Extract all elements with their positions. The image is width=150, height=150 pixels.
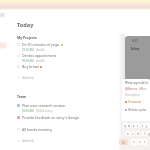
staticText: Website updat: [128, 108, 147, 112]
staticText: Health: [36, 59, 45, 63]
staticText: ·: [22, 133, 23, 137]
staticText: d: [137, 132, 139, 136]
button[interactable]: g: [147, 131, 150, 136]
staticText: 9:41: [132, 39, 138, 43]
button[interactable]: e: [132, 123, 136, 128]
staticText: All hands meeting: [22, 127, 52, 132]
button[interactable]: r: [136, 123, 140, 128]
staticText: 09:30 AM: [22, 59, 34, 63]
button[interactable]: Provide feedback on story's design: [0, 115, 150, 120]
button[interactable]: Add task: [0, 76, 150, 80]
staticText: Description: [125, 93, 140, 97]
staticText: @Marcus: [125, 87, 138, 91]
staticText: Provide feedback on story's design: [22, 115, 80, 120]
staticText: q: [124, 124, 126, 128]
staticText: f: [144, 132, 145, 136]
staticText: 09:00 AM: [22, 109, 34, 113]
staticText: z: [133, 140, 135, 144]
button[interactable]: x: [137, 139, 142, 145]
staticText: Do 30 minutes of yoga: [22, 42, 60, 47]
staticText: Inbox: [131, 47, 140, 51]
staticText: 07:30 AM: [22, 48, 34, 52]
staticText: Add task: [22, 139, 35, 143]
staticText: Q3 Discovery: [36, 109, 53, 113]
staticText: x: [139, 140, 141, 144]
staticText: Team: [17, 94, 27, 99]
staticText: w: [128, 124, 131, 128]
button[interactable]: Dentist appointment: [0, 53, 150, 63]
button[interactable]: y: [145, 123, 149, 128]
button[interactable]: All hands meeting: [0, 127, 150, 137]
staticText: r: [137, 124, 139, 128]
staticText: Add task: [22, 76, 35, 80]
staticText: #Mee: [139, 87, 147, 91]
button[interactable]: Today: [17, 21, 34, 29]
button[interactable]: Add task: [0, 139, 150, 143]
button[interactable]: Plan user research session: [0, 103, 150, 113]
staticText: e: [133, 124, 135, 128]
button[interactable]: Do 30 minutes of yoga: [0, 42, 150, 52]
button[interactable]: a: [126, 131, 130, 136]
button[interactable]: q: [123, 123, 127, 128]
button[interactable]: c: [142, 139, 147, 145]
staticText: Health: [36, 48, 45, 52]
staticText: Plan user research session: [22, 103, 66, 108]
staticText: My Projects: [17, 35, 37, 40]
button[interactable]: z: [131, 139, 136, 145]
staticText: Buy bread: [22, 64, 39, 69]
staticText: c: [144, 140, 146, 144]
button[interactable]: Buy bread: [0, 64, 150, 69]
button[interactable]: t: [141, 123, 145, 128]
staticText: Write agenda fo: [125, 81, 149, 85]
staticText: a: [127, 132, 129, 136]
staticText: y: [146, 124, 148, 128]
button[interactable]: f: [142, 131, 146, 136]
button[interactable]: w: [127, 123, 131, 128]
button[interactable]: d: [136, 131, 140, 136]
button[interactable]: Emoji: [119, 139, 128, 145]
staticText: t: [142, 124, 144, 128]
staticText: Tomorrow: [128, 100, 141, 104]
staticText: Dentist appointment: [22, 53, 57, 58]
staticText: g: [148, 132, 150, 136]
staticText: s: [132, 132, 134, 136]
button[interactable]: s: [131, 131, 135, 136]
